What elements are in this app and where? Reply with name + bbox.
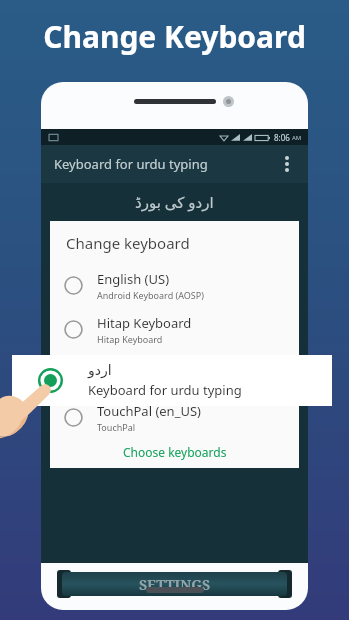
staticText: Keyboard for urdu typing	[88, 381, 242, 399]
button[interactable]: اردو	[50, 354, 299, 392]
staticText: Change Keyboard	[43, 16, 306, 57]
staticText: English (US)	[97, 270, 170, 288]
staticText: اردو کی بورڈ	[135, 192, 214, 212]
staticText: اردو	[88, 362, 112, 378]
button[interactable]: Hitap Keyboard	[50, 310, 299, 348]
button[interactable]: TouchPal (en_US)	[50, 398, 299, 436]
staticText: Choose keyboards	[123, 444, 227, 460]
staticText: TouchPal	[97, 421, 136, 433]
button[interactable]: اردو	[12, 355, 332, 406]
button[interactable]: Keyboard for urdu typing	[41, 145, 308, 183]
button[interactable]: Choose keyboards	[50, 436, 299, 468]
button[interactable]: More options	[276, 153, 298, 175]
staticText: Hitap Keyboard	[97, 333, 163, 345]
staticText: Android Keyboard (AOSP)	[97, 289, 204, 301]
staticText: Keyboard for urdu typing	[97, 375, 204, 387]
button[interactable]: Home	[146, 587, 204, 593]
staticText: SETTINGS	[139, 575, 211, 594]
staticText: 8:06	[274, 132, 290, 143]
staticText: اردو	[97, 359, 119, 374]
staticText: Keyboard for urdu typing	[54, 155, 208, 173]
staticText: TouchPal (en_US)	[97, 402, 201, 420]
button[interactable]: SETTINGS	[57, 569, 292, 599]
staticText: AM	[292, 134, 302, 142]
staticText: Change keyboard	[66, 233, 190, 253]
staticText: Hitap Keyboard	[97, 314, 192, 332]
button[interactable]: English (US)	[50, 266, 299, 304]
